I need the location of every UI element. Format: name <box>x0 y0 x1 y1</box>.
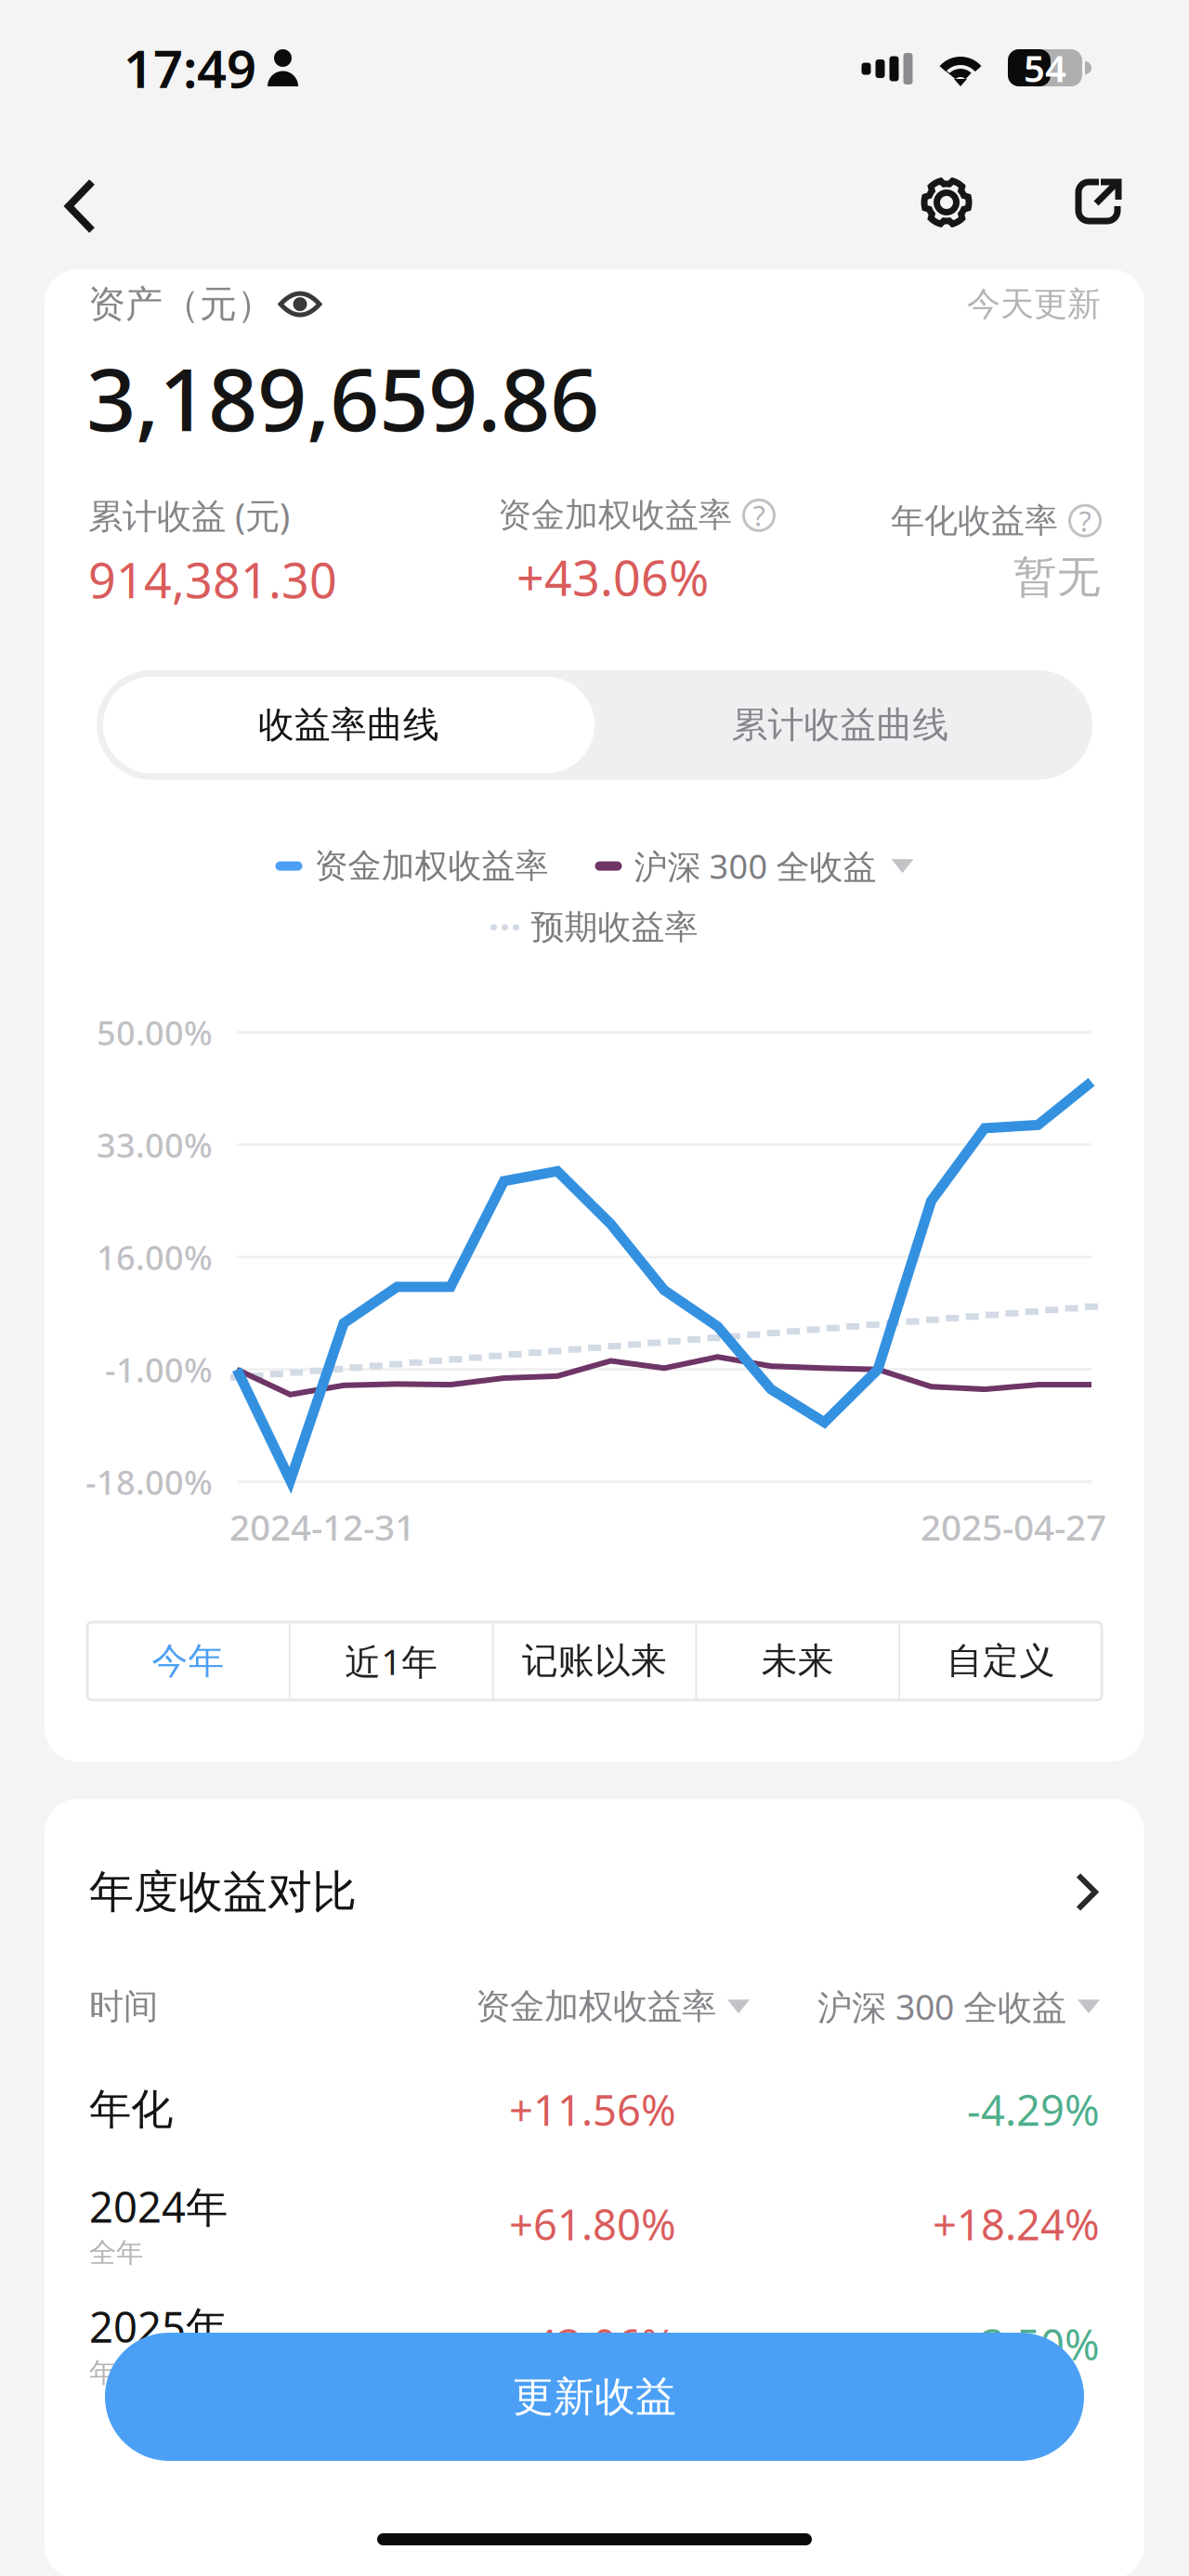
staticText: 2024年 <box>89 2178 228 2234</box>
staticText: 年化收益率 <box>891 500 1058 541</box>
staticText: ? <box>753 496 765 534</box>
staticText: 资金加权收益率 <box>498 495 732 536</box>
button[interactable]: 未来 <box>697 1622 898 1700</box>
button[interactable]: 年度收益对比 <box>45 1799 1144 1944</box>
staticText: -18.00% <box>85 1460 213 1504</box>
staticText: 2024-12-31 <box>229 1503 415 1551</box>
staticText: 17:49 <box>124 33 256 102</box>
staticText: 累计收益曲线 <box>732 703 949 747</box>
staticText: -4.29% <box>967 2082 1100 2137</box>
staticText: -3.50% <box>967 2316 1100 2372</box>
button[interactable]: 今年 <box>87 1622 289 1700</box>
staticText: 更新收益 <box>513 2372 676 2422</box>
button[interactable]: 近1年 <box>291 1622 492 1700</box>
staticText: 累计收益 (元) <box>88 492 290 538</box>
staticText: +61.80% <box>509 2196 676 2252</box>
staticText: 年度收益对比 <box>89 1865 357 1919</box>
staticText: 沪深 300 全收益 <box>634 844 876 888</box>
staticText: 16.00% <box>97 1235 213 1279</box>
staticText: 自定义 <box>947 1639 1055 1683</box>
staticText: ? <box>1079 502 1091 540</box>
staticText: 全年 <box>89 2236 143 2269</box>
staticText: 33.00% <box>97 1123 213 1167</box>
staticText: 年化 <box>89 2084 173 2135</box>
staticText: +11.56% <box>509 2082 676 2137</box>
staticText: 时间 <box>89 1985 158 2028</box>
staticText: +18.24% <box>933 2196 1100 2252</box>
staticText: 2025-04-27 <box>921 1503 1106 1551</box>
button[interactable]: 记账以来 <box>494 1622 695 1700</box>
staticText: 3,189,659.86 <box>86 340 599 455</box>
staticText: 近1年 <box>345 1637 438 1685</box>
button[interactable]: 累计收益曲线 <box>594 677 1086 773</box>
staticText: 54 <box>1024 43 1066 92</box>
staticText: 暂无 <box>1013 550 1101 604</box>
staticText: 50.00% <box>97 1010 213 1055</box>
staticText: 未来 <box>762 1639 834 1683</box>
button[interactable]: Share <box>1064 136 1189 269</box>
button[interactable]: Back <box>0 136 124 269</box>
staticText: +43.06% <box>516 545 709 609</box>
staticText: +43.06% <box>509 2316 676 2372</box>
staticText: 沪深 300 全收益 <box>817 1984 1066 2030</box>
staticText: 资产（元） <box>88 281 274 327</box>
button[interactable]: 更新收益 <box>105 2333 1084 2461</box>
staticText: 收益率曲线 <box>258 703 439 747</box>
staticText: 914,381.30 <box>88 548 337 612</box>
staticText: 记账以来 <box>522 1639 667 1683</box>
staticText: 今天更新 <box>967 284 1101 325</box>
staticText: 预期收益率 <box>531 907 698 948</box>
staticText: -1.00% <box>105 1347 213 1392</box>
staticText: 年初至今 <box>89 2356 197 2390</box>
button[interactable]: 收益率曲线 <box>103 677 594 773</box>
button[interactable]: Settings <box>918 136 1064 269</box>
staticText: 今年 <box>152 1639 224 1683</box>
staticText: 资金加权收益率 <box>314 846 549 887</box>
button[interactable]: 自定义 <box>900 1622 1102 1700</box>
staticText: 资金加权收益率 <box>476 1985 716 2028</box>
staticText: 2025年 <box>89 2298 228 2354</box>
